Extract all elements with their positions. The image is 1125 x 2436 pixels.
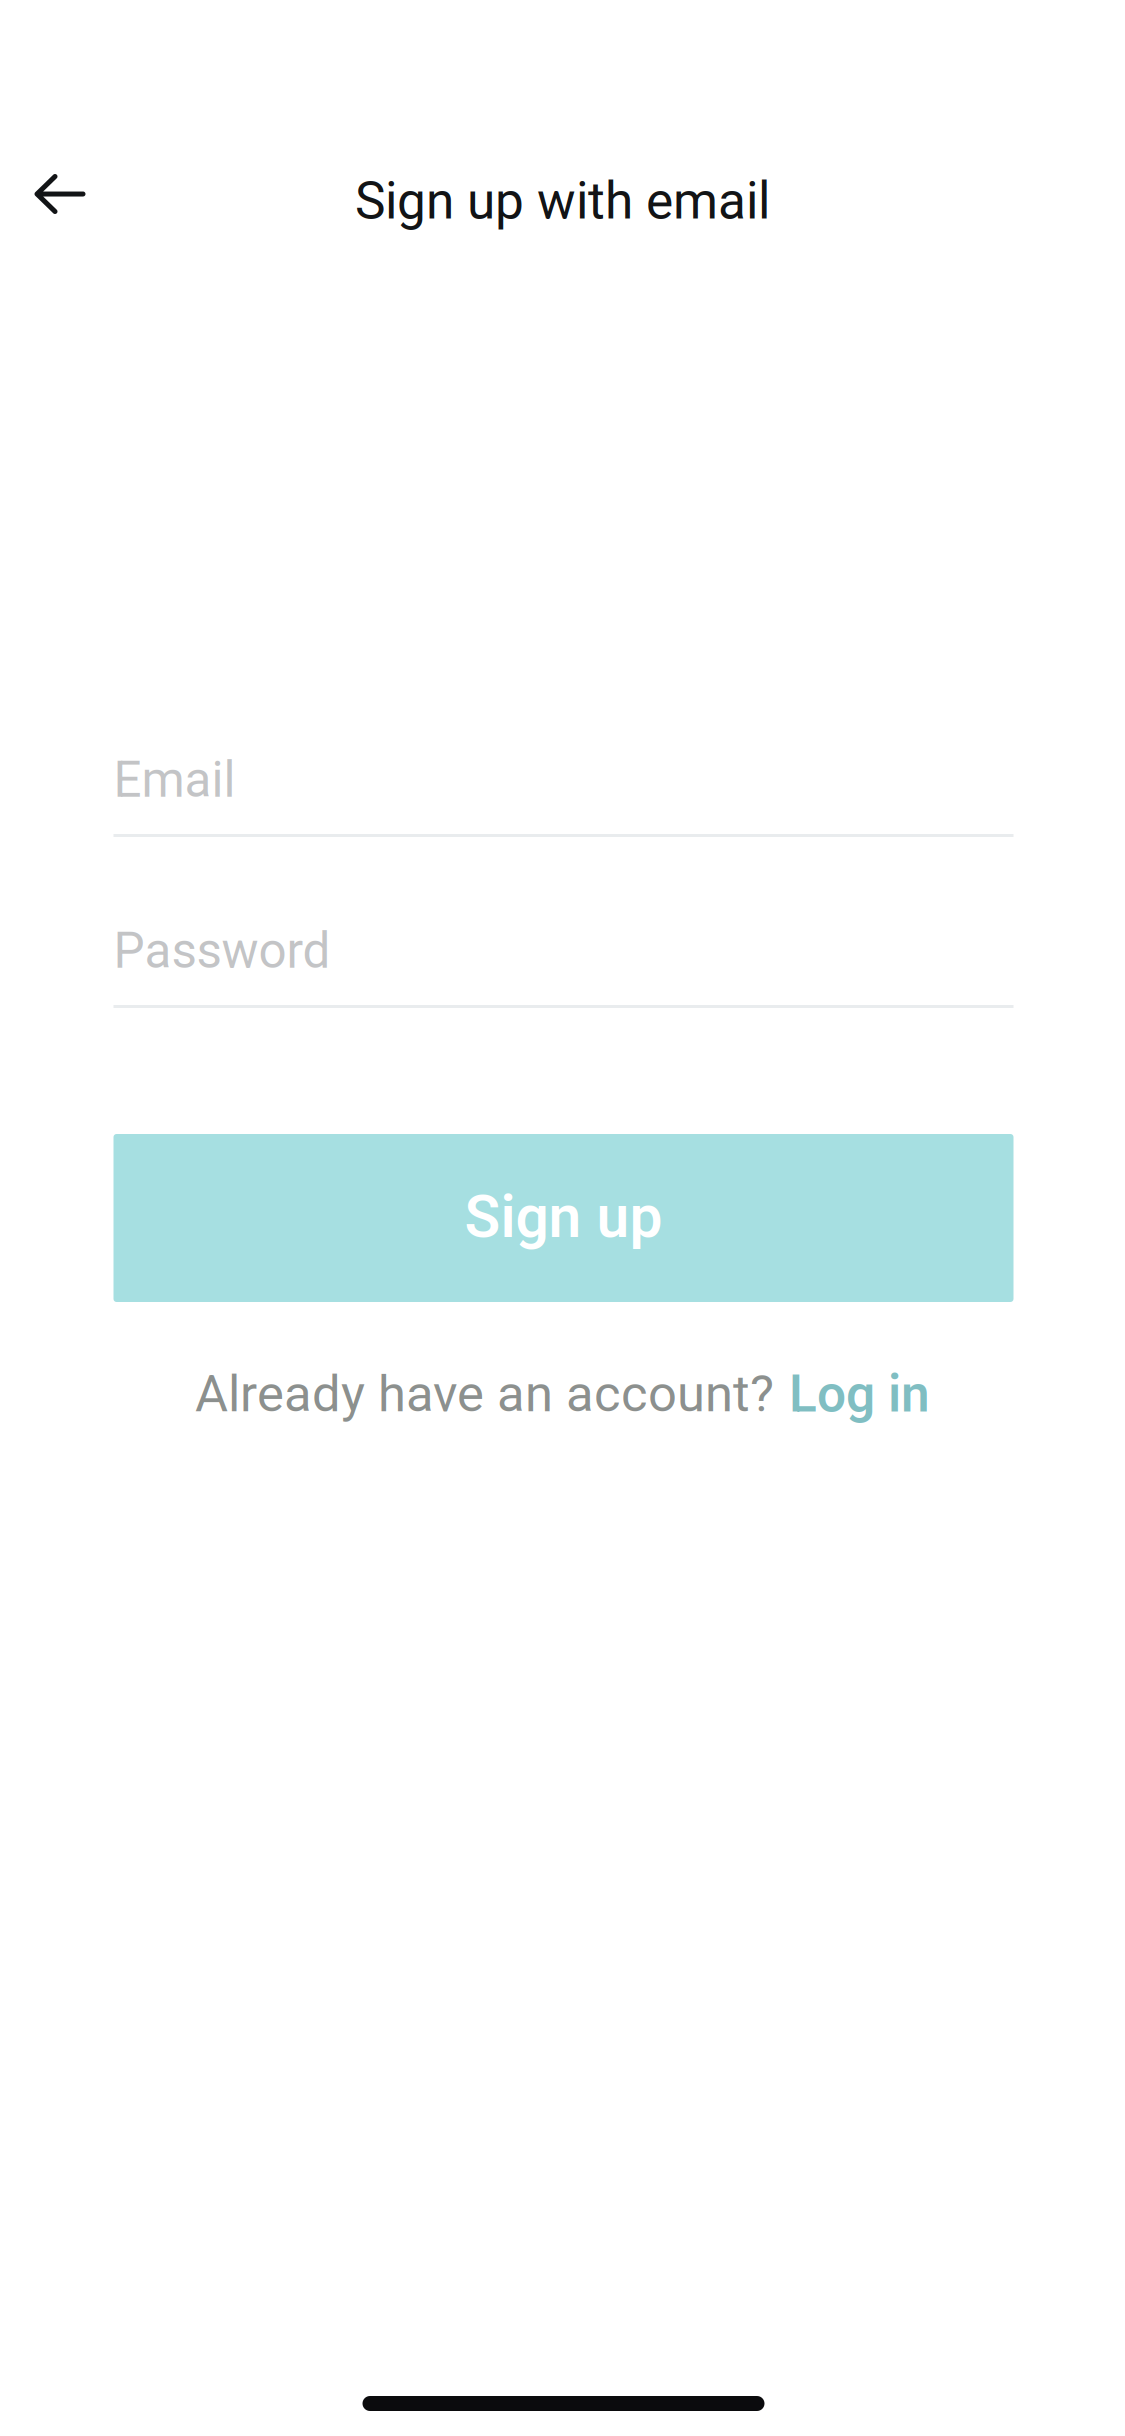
button[interactable]: Password <box>113 922 1013 1008</box>
staticText: Sign up with email <box>355 171 770 231</box>
staticText: Sign up <box>464 1183 662 1251</box>
staticText: Log in <box>789 1364 930 1424</box>
button[interactable]: Log in <box>787 1364 930 1424</box>
staticText: Password <box>113 922 330 980</box>
button[interactable]: Back <box>4 146 116 242</box>
button[interactable]: Sign up <box>113 1134 1013 1302</box>
staticText: Already have an account? <box>195 1364 787 1424</box>
button[interactable]: Email <box>113 751 1013 837</box>
staticText: Email <box>113 751 235 809</box>
